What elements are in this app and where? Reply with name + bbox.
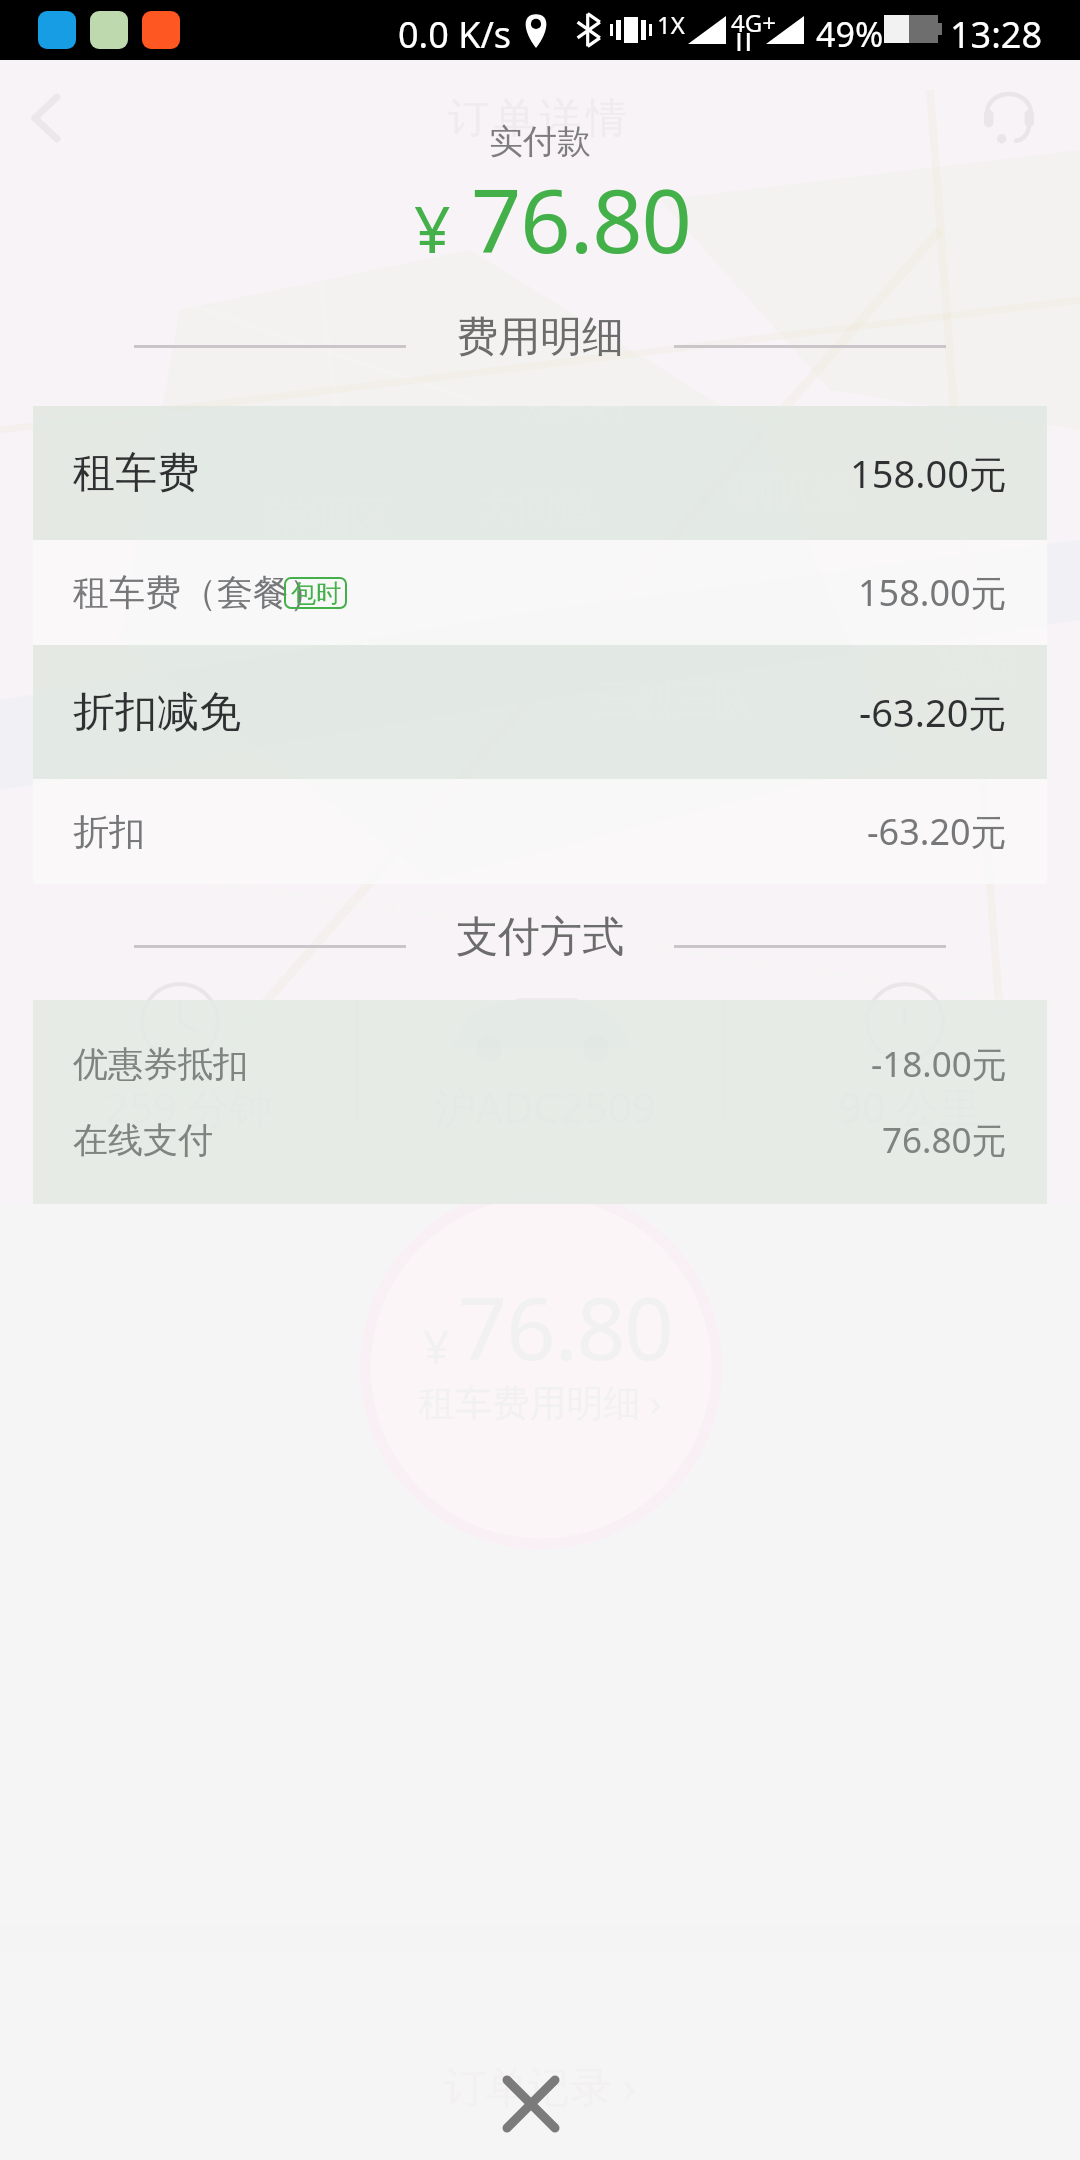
staticText: 实付款	[0, 120, 1080, 163]
staticText: 费用明细	[456, 311, 624, 364]
button[interactable]: 折扣	[33, 779, 1047, 884]
staticText: 13:28	[950, 10, 1043, 59]
staticText: ¥	[414, 185, 451, 272]
staticText: 订单详情	[0, 93, 1080, 145]
button[interactable]: Close	[466, 2039, 596, 2160]
staticText: 租车费（套餐）	[73, 570, 325, 615]
staticText: 76.80	[458, 1268, 673, 1385]
button[interactable]: 租车费（套餐）	[33, 540, 1047, 645]
staticText: 折扣	[73, 809, 145, 854]
staticText: 包时	[291, 578, 341, 609]
staticText: 支付方式	[456, 911, 624, 964]
button[interactable]: 租车费	[33, 406, 1047, 540]
staticText: 76.80	[471, 159, 691, 279]
staticText: -63.20元	[867, 807, 1007, 856]
staticText: 158.00元	[858, 568, 1007, 617]
staticText: -18.00元	[871, 1040, 1007, 1088]
staticText: 折扣减免	[73, 686, 241, 739]
staticText: 0.0 K/s	[398, 10, 512, 59]
staticText: 76.80元	[882, 1116, 1007, 1164]
staticText: 158.00元	[850, 447, 1007, 499]
staticText: 4G+	[731, 6, 776, 39]
staticText: 崇明区	[266, 492, 392, 545]
staticText: ¥	[423, 1315, 450, 1378]
staticText: -63.20元	[859, 686, 1007, 738]
staticText: 知凤村	[520, 382, 628, 427]
staticText: G40	[908, 280, 968, 324]
staticText: 南四沙里	[848, 786, 1000, 834]
staticText: 元三队	[88, 356, 214, 409]
staticText: 租车费	[73, 447, 199, 500]
button[interactable]: 优惠券抵扣	[33, 1036, 1047, 1092]
staticText: 订单记录 ›	[0, 2057, 1080, 2114]
staticText: 在线支付	[73, 1118, 213, 1162]
button[interactable]: Customer service	[963, 73, 1055, 165]
staticText: 49%	[816, 11, 884, 57]
button[interactable]: 在线支付	[33, 1112, 1047, 1168]
staticText: 大大道	[0, 578, 104, 626]
button[interactable]: 折扣减免	[33, 645, 1047, 779]
staticText: 漾滨	[938, 640, 1018, 690]
staticText: 90 公里	[838, 1078, 981, 1135]
staticText: 259 分钟	[105, 1078, 272, 1135]
staticText: 优惠券抵扣	[73, 1042, 248, 1086]
staticText: 1X	[657, 8, 685, 41]
